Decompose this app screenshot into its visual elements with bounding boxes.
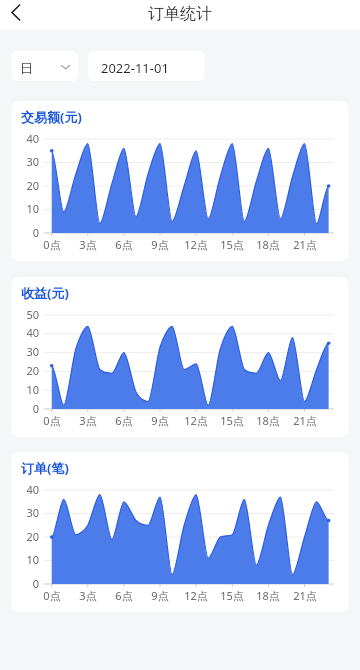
staticText: 0点	[34, 237, 70, 252]
staticText: 10	[13, 552, 39, 567]
staticText: 20	[13, 178, 39, 193]
staticText: 21点	[287, 588, 323, 603]
staticText: 订单统计	[148, 4, 212, 24]
staticText: 6点	[106, 237, 142, 252]
staticText: 0	[13, 225, 39, 240]
staticText: 18点	[250, 413, 286, 428]
staticText: 0点	[34, 413, 70, 428]
staticText: 21点	[287, 237, 323, 252]
staticText: 30	[13, 505, 39, 520]
staticText: 40	[13, 482, 39, 497]
staticText: 40	[13, 131, 39, 146]
staticText: 15点	[214, 237, 250, 252]
staticText: 20	[13, 363, 39, 378]
staticText: 交易额(元)	[21, 108, 82, 126]
staticText: 3点	[70, 413, 106, 428]
staticText: 0	[13, 576, 39, 591]
staticText: 9点	[142, 237, 178, 252]
staticText: 20	[13, 529, 39, 544]
staticText: 40	[13, 325, 39, 340]
button[interactable]: 2022-11-01	[88, 51, 205, 81]
staticText: 3点	[70, 588, 106, 603]
staticText: 12点	[178, 413, 214, 428]
staticText: 21点	[287, 413, 323, 428]
staticText: 10	[13, 382, 39, 397]
staticText: 0点	[34, 588, 70, 603]
staticText: 30	[13, 344, 39, 359]
staticText: 3点	[70, 237, 106, 252]
staticText: 18点	[250, 588, 286, 603]
staticText: 9点	[142, 413, 178, 428]
staticText: 50	[13, 307, 39, 322]
staticText: 30	[13, 154, 39, 169]
staticText: 2022-11-01	[101, 59, 169, 77]
staticText: 日	[20, 60, 33, 76]
staticText: 15点	[214, 588, 250, 603]
staticText: 18点	[250, 237, 286, 252]
staticText: 收益(元)	[21, 284, 69, 302]
staticText: 10	[13, 201, 39, 216]
staticText: 12点	[178, 237, 214, 252]
staticText: 0	[13, 401, 39, 416]
staticText: 订单(笔)	[21, 459, 69, 477]
button[interactable]: Back	[0, 0, 32, 30]
staticText: 12点	[178, 588, 214, 603]
staticText: 15点	[214, 413, 250, 428]
staticText: 6点	[106, 413, 142, 428]
staticText: 9点	[142, 588, 178, 603]
button[interactable]: 日	[11, 51, 78, 81]
staticText: 6点	[106, 588, 142, 603]
